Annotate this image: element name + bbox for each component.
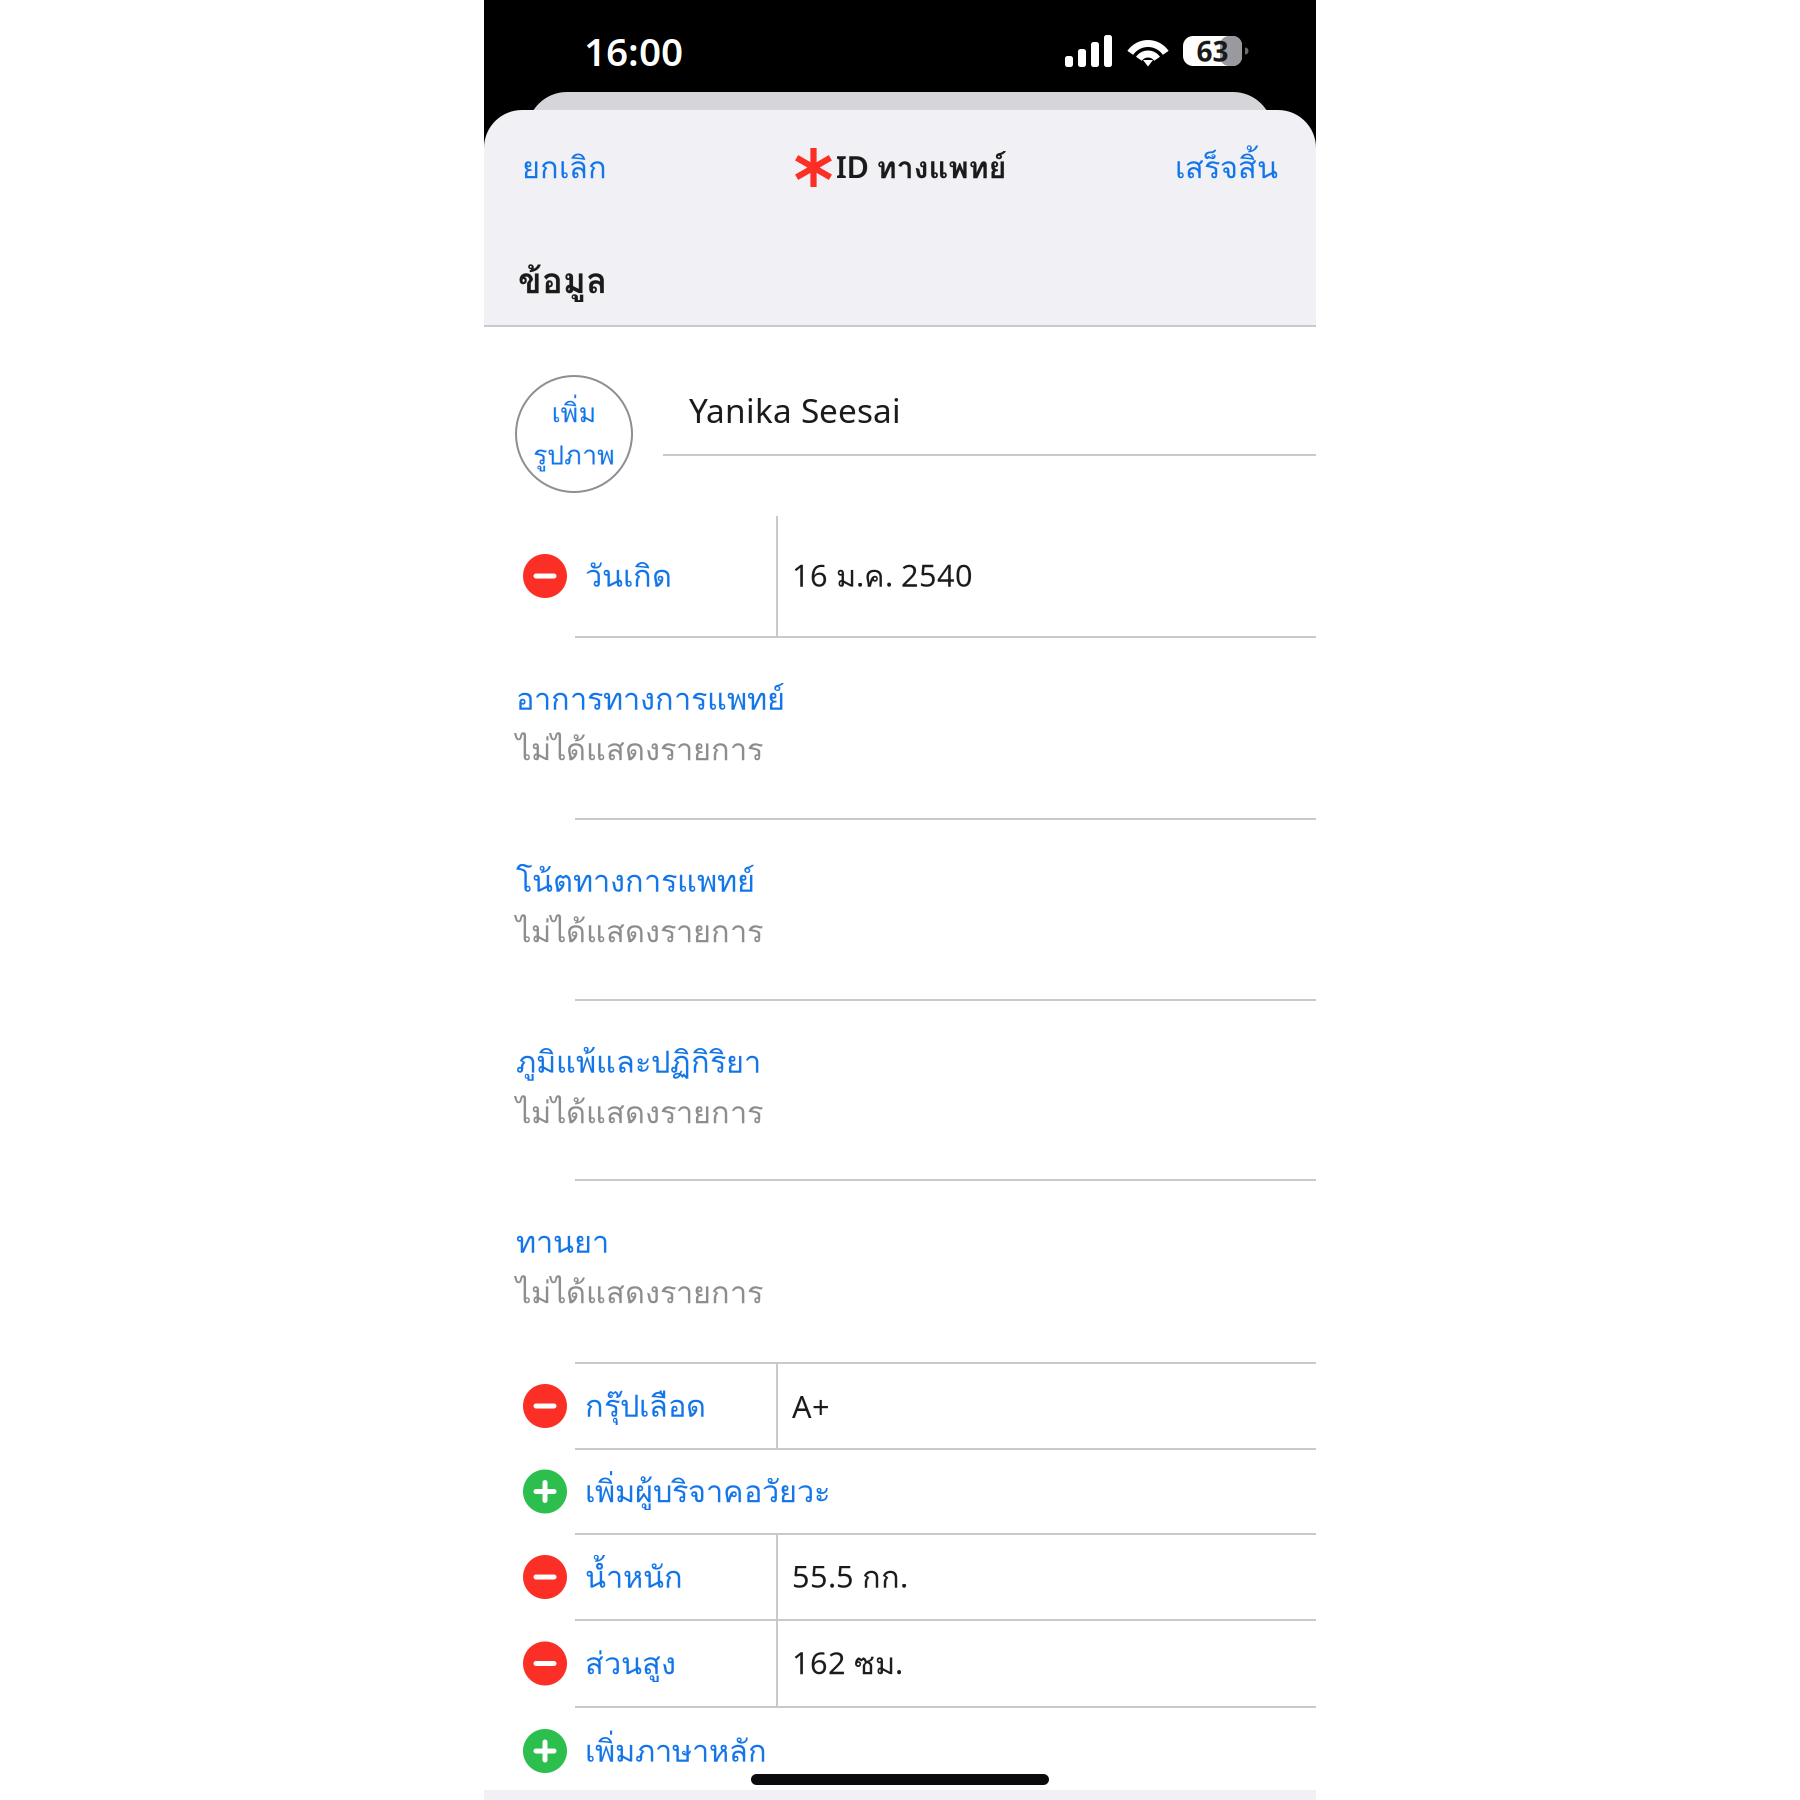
button[interactable]: กรุ๊ปเลือด	[484, 1364, 1316, 1448]
staticText: รูปภาพ	[533, 434, 615, 476]
staticText: ทานยา	[516, 1218, 609, 1265]
button[interactable]: ส่วนสูง	[484, 1621, 1316, 1706]
staticText: 16 ม.ค. 2540	[792, 552, 973, 600]
button[interactable]: Yanika Seesai	[484, 327, 1316, 454]
button[interactable]: วันเกิด	[484, 516, 1316, 636]
button[interactable]: ภูมิแพ้และปฏิกิริยา	[484, 1001, 1316, 1179]
staticText: ไม่ได้แสดงรายการ	[516, 1268, 763, 1316]
button[interactable]: เสร็จสิ้น	[1169, 126, 1284, 209]
staticText: อาการทางการแพทย์	[516, 675, 785, 722]
staticText: เพิ่มภาษาหลัก	[585, 1727, 767, 1775]
button[interactable]: โน้ตทางการแพทย์	[484, 820, 1316, 999]
staticText: กรุ๊ปเลือด	[585, 1382, 706, 1430]
staticText: วันเกิด	[585, 552, 672, 600]
staticText: Yanika Seesai	[689, 388, 901, 432]
staticText: ไม่ได้แสดงรายการ	[516, 1088, 763, 1136]
button[interactable]: ทานยา	[484, 1181, 1316, 1362]
staticText: ไม่ได้แสดงรายการ	[516, 907, 763, 955]
button[interactable]: ยกเลิก	[516, 126, 613, 209]
staticText: ไม่ได้แสดงรายการ	[516, 725, 763, 773]
button[interactable]: น้ำหนัก	[484, 1535, 1316, 1619]
staticText: ส่วนสูง	[585, 1640, 676, 1687]
button[interactable]: เพิ่มผู้บริจาคอวัยวะ	[484, 1450, 1316, 1533]
staticText: 162 ซม.	[792, 1640, 903, 1687]
staticText: เพิ่ม	[551, 392, 596, 433]
staticText: A+	[792, 1386, 830, 1426]
button[interactable]: เพิ่มภาษาหลัก	[484, 1708, 1316, 1794]
staticText: 16:00	[584, 25, 683, 77]
staticText: ภูมิแพ้และปฏิกิริยา	[516, 1038, 761, 1085]
staticText: เพิ่มผู้บริจาคอวัยวะ	[585, 1468, 830, 1515]
button[interactable]: Add Photo	[516, 376, 632, 492]
staticText: 63	[1196, 32, 1228, 70]
staticText: ยกเลิก	[522, 144, 607, 191]
staticText: โน้ตทางการแพทย์	[516, 857, 755, 904]
staticText: เสร็จสิ้น	[1175, 144, 1278, 191]
staticText: 55.5 กก.	[792, 1553, 908, 1601]
button[interactable]: อาการทางการแพทย์	[484, 638, 1316, 818]
staticText: ข้อมูล	[518, 254, 607, 308]
staticText: น้ำหนัก	[585, 1553, 683, 1601]
staticText: ID ทางแพทย์	[835, 144, 1006, 191]
